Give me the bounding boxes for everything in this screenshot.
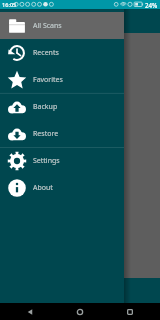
- button[interactable]: All Scans: [0, 12, 124, 39]
- staticText: Settings: [33, 156, 60, 166]
- button[interactable]: Favorites: [0, 66, 124, 93]
- staticText: All Scans: [33, 21, 62, 31]
- button[interactable]: Settings: [0, 147, 124, 174]
- staticText: Recents: [33, 48, 59, 58]
- staticText: 24%: [145, 1, 158, 9]
- button[interactable]: Back: [10, 304, 50, 320]
- staticText: Restore: [33, 129, 59, 139]
- button[interactable]: Recent apps: [110, 304, 150, 320]
- staticText: About: [33, 183, 53, 193]
- button[interactable]: About: [0, 174, 124, 201]
- button[interactable]: Backup: [0, 93, 124, 120]
- button[interactable]: Recents: [0, 39, 124, 66]
- staticText: 16:05: [2, 1, 17, 9]
- staticText: Favorites: [33, 75, 63, 85]
- button[interactable]: Home: [60, 304, 100, 320]
- staticText: Backup: [33, 102, 58, 112]
- button[interactable]: Restore: [0, 120, 124, 147]
